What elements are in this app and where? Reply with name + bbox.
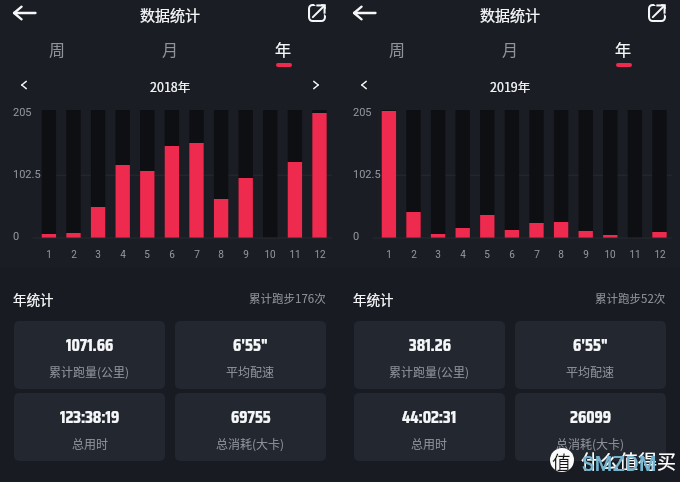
staticText: 什么值得买 <box>581 447 677 475</box>
staticText: SMZDM <box>582 452 658 475</box>
staticText: 205 <box>353 106 372 119</box>
button[interactable]: Back <box>8 0 40 25</box>
staticText: 69755 <box>231 403 271 431</box>
staticText: 4 <box>451 249 475 261</box>
staticText: 5 <box>135 249 159 261</box>
button[interactable]: Previous year <box>13 74 35 96</box>
staticText: 年 <box>275 37 292 60</box>
staticText: 月 <box>502 37 519 60</box>
staticText: 1071.66 <box>66 331 114 359</box>
button[interactable]: 44:02:31 <box>354 393 505 461</box>
staticText: 102.5 <box>13 168 41 181</box>
staticText: 年统计 <box>353 289 394 309</box>
staticText: 12 <box>308 249 332 261</box>
staticText: 205 <box>13 106 32 119</box>
staticText: 周 <box>389 37 406 60</box>
button[interactable]: 26099 <box>515 393 666 461</box>
staticText: 总用时 <box>72 435 109 452</box>
staticText: 平均配速 <box>226 363 275 380</box>
button[interactable]: Previous year <box>353 74 375 96</box>
staticText: 12 <box>648 249 672 261</box>
staticText: 102.5 <box>353 168 381 181</box>
staticText: 2 <box>402 249 426 261</box>
staticText: 3 <box>426 249 450 261</box>
staticText: 累计跑步52次 <box>595 290 666 307</box>
button[interactable]: Next year <box>305 74 327 96</box>
staticText: 2018年 <box>150 77 191 95</box>
staticText: 44:02:31 <box>402 403 457 431</box>
staticText: 周 <box>49 37 66 60</box>
button[interactable]: 69755 <box>175 393 326 461</box>
staticText: 5 <box>475 249 499 261</box>
staticText: 2019年 <box>490 77 531 95</box>
button[interactable]: 月 <box>114 33 227 71</box>
staticText: 381.26 <box>409 331 451 359</box>
staticText: 6'55" <box>573 331 608 359</box>
staticText: 数据统计 <box>480 4 541 26</box>
staticText: 6 <box>160 249 184 261</box>
staticText: 10 <box>598 249 622 261</box>
button[interactable]: Share <box>644 0 670 26</box>
staticText: 0 <box>13 230 20 243</box>
button[interactable]: 123:38:19 <box>14 393 165 461</box>
staticText: 总用时 <box>411 435 448 452</box>
staticText: 累计跑量(公里) <box>389 363 470 380</box>
staticText: 平均配速 <box>566 363 615 380</box>
staticText: 11 <box>623 249 647 261</box>
staticText: 123:38:19 <box>60 403 120 431</box>
button[interactable]: 1071.66 <box>14 321 165 389</box>
staticText: 总消耗(大卡) <box>216 435 285 452</box>
button[interactable]: 年 <box>567 33 680 71</box>
button[interactable]: 周 <box>340 33 454 71</box>
staticText: 6 <box>500 249 524 261</box>
staticText: 7 <box>525 249 549 261</box>
button[interactable]: Share <box>304 0 330 26</box>
button[interactable]: Back <box>348 0 380 25</box>
staticText: 值 <box>552 448 572 472</box>
staticText: 6'55" <box>233 331 268 359</box>
staticText: 9 <box>234 249 258 261</box>
staticText: 4 <box>111 249 135 261</box>
staticText: 7 <box>185 249 209 261</box>
button[interactable]: 年 <box>227 33 340 71</box>
staticText: 数据统计 <box>140 4 201 26</box>
staticText: 9 <box>574 249 598 261</box>
staticText: 8 <box>549 249 573 261</box>
button[interactable]: 周 <box>0 33 114 71</box>
staticText: 0 <box>353 230 360 243</box>
button[interactable]: 6'55" <box>515 321 666 389</box>
staticText: 总消耗(大卡) <box>556 435 625 452</box>
staticText: 8 <box>209 249 233 261</box>
staticText: 2 <box>62 249 86 261</box>
button[interactable]: 月 <box>454 33 567 71</box>
staticText: 3 <box>86 249 110 261</box>
staticText: 10 <box>258 249 282 261</box>
staticText: 1 <box>377 249 401 261</box>
button[interactable]: 381.26 <box>354 321 505 389</box>
staticText: 月 <box>162 37 179 60</box>
staticText: 年统计 <box>13 289 54 309</box>
staticText: 1 <box>37 249 61 261</box>
button[interactable]: 6'55" <box>175 321 326 389</box>
staticText: 累计跑量(公里) <box>49 363 130 380</box>
staticText: 26099 <box>570 403 612 431</box>
staticText: 年 <box>615 37 632 60</box>
staticText: 11 <box>283 249 307 261</box>
staticText: 累计跑步176次 <box>249 290 326 307</box>
